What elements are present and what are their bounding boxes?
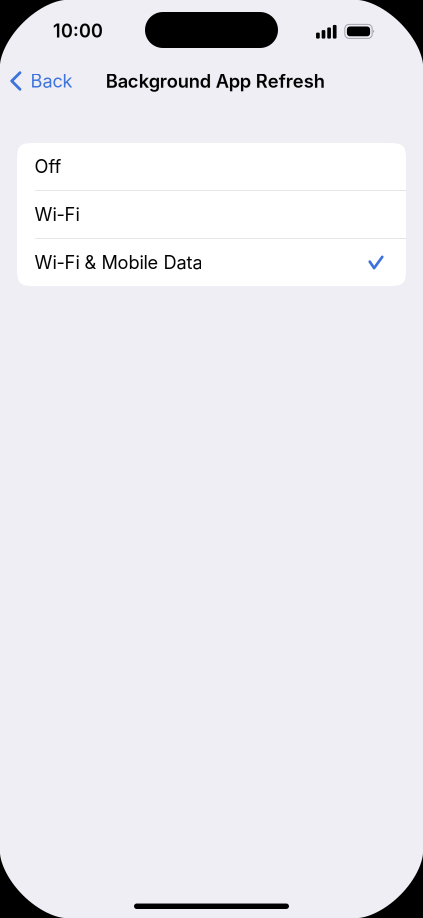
staticText: Back bbox=[31, 70, 73, 92]
staticText: Wi-Fi & Mobile Data bbox=[34, 251, 202, 273]
button[interactable]: Wi-Fi & Mobile Data bbox=[17, 239, 406, 286]
button[interactable]: Wi-Fi bbox=[17, 191, 406, 238]
staticText: Background App Refresh bbox=[106, 70, 325, 92]
staticText: Wi-Fi bbox=[34, 203, 79, 225]
button[interactable]: Off bbox=[17, 143, 406, 190]
button[interactable]: Back bbox=[0, 63, 85, 99]
staticText: 10:00 bbox=[53, 20, 103, 42]
staticText: Off bbox=[34, 155, 61, 177]
